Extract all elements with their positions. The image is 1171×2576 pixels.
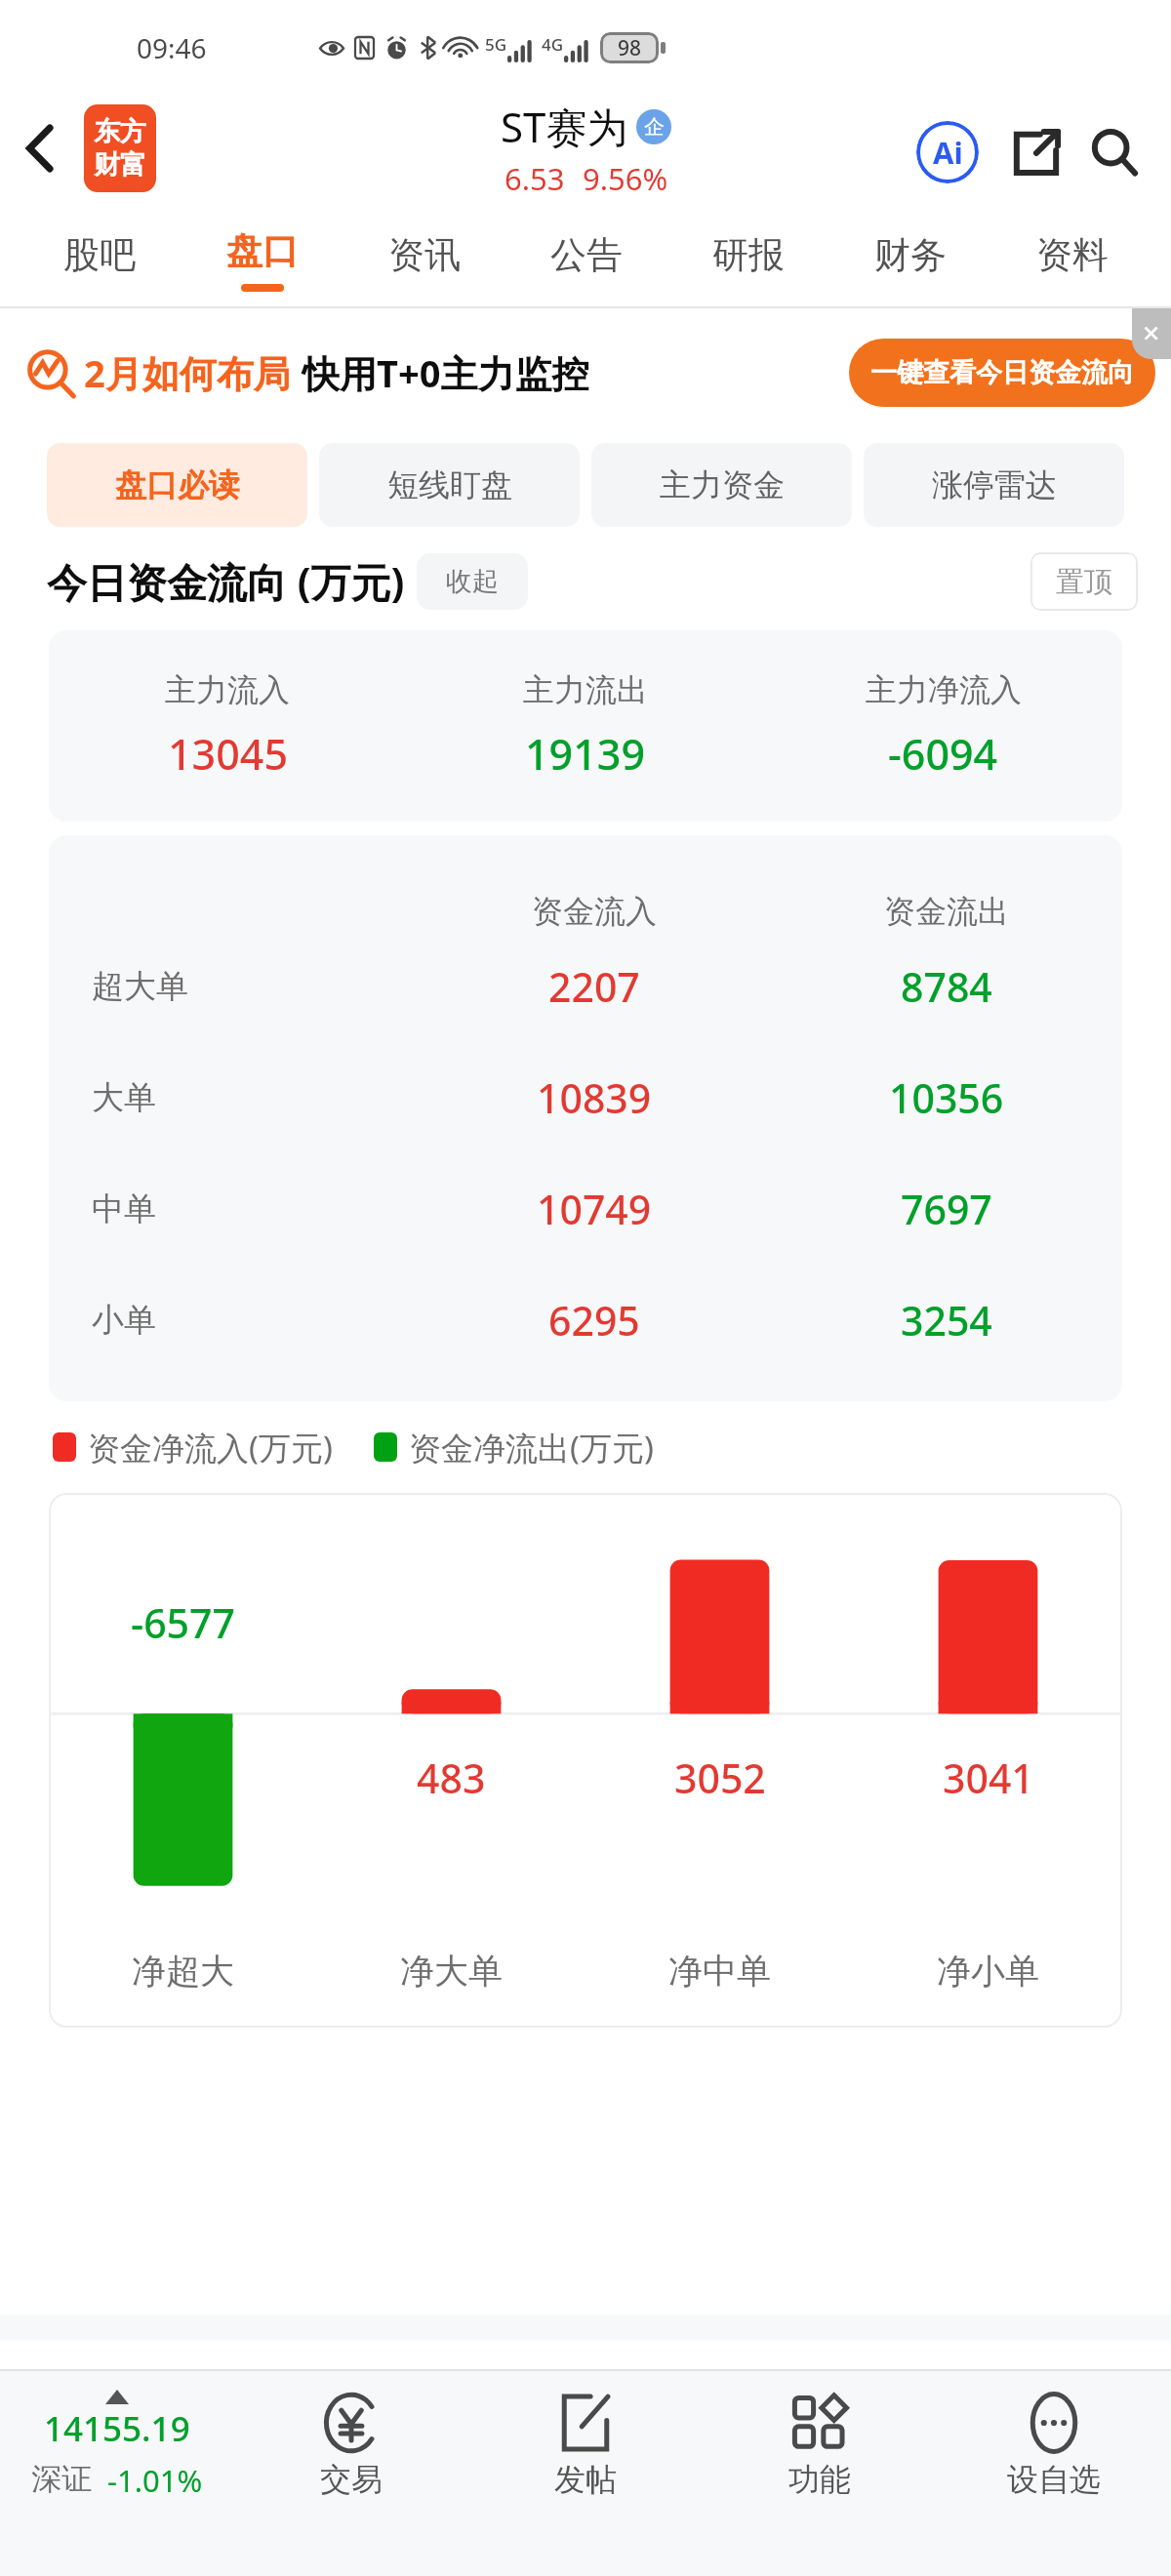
button[interactable]: 资料 (991, 207, 1153, 306)
staticText: 8784 (901, 959, 992, 1014)
button[interactable]: 超大单 (49, 931, 1122, 1042)
staticText: 短线盯盘 (387, 465, 512, 504)
staticText: 资金流出 (884, 892, 1009, 931)
button[interactable]: 14155.19 (0, 2371, 234, 2519)
button[interactable]: 中单 (49, 1153, 1122, 1265)
staticText: 涨停雷达 (932, 465, 1057, 504)
staticText: 主力流入 (165, 670, 290, 709)
button[interactable]: 东方财富 (84, 104, 156, 192)
button[interactable]: 盘口 (181, 207, 343, 306)
staticText: 13045 (168, 725, 288, 783)
staticText: 主力净流入 (866, 670, 1022, 709)
button[interactable]: 主力流入 (49, 630, 1122, 822)
staticText: 483 (417, 1751, 486, 1805)
button[interactable]: 大单 (49, 1042, 1122, 1153)
button[interactable]: Search (1079, 117, 1150, 187)
staticText: 资金净流入(万元) (88, 1426, 333, 1469)
staticText: 中单 (92, 1188, 156, 1229)
staticText: 净大单 (400, 1950, 503, 1992)
staticText: 设自选 (1007, 2460, 1101, 2499)
button[interactable]: 小单 (49, 1265, 1122, 1376)
staticText: 4G (542, 33, 564, 56)
staticText: 14155.19 (44, 2405, 190, 2452)
button[interactable]: 主力资金 (591, 443, 852, 527)
staticText: 一键查看今日资金流向 (870, 356, 1134, 389)
staticText: 资金流入 (532, 892, 657, 931)
button[interactable]: 发帖 (468, 2371, 703, 2519)
button[interactable]: Share (1001, 117, 1071, 187)
staticText: 今日资金流向 (万元) (47, 554, 405, 609)
button[interactable]: 财务 (829, 207, 991, 306)
staticText: 资讯 (388, 232, 461, 278)
staticText: 2月如何布局 (84, 347, 291, 398)
staticText: 6295 (548, 1293, 640, 1348)
staticText: 19139 (525, 725, 645, 783)
button[interactable]: 一键查看今日资金流向 (849, 339, 1155, 407)
staticText: 3254 (901, 1293, 992, 1348)
button[interactable]: 公告 (505, 207, 667, 306)
staticText: 东方 (94, 115, 146, 148)
button[interactable]: 研报 (667, 207, 829, 306)
staticText: 研报 (712, 232, 785, 278)
staticText: 财富 (94, 148, 146, 181)
staticText: 交易 (320, 2460, 383, 2499)
staticText: 公告 (550, 232, 623, 278)
staticText: 净小单 (937, 1950, 1039, 1992)
staticText: -6577 (131, 1595, 235, 1650)
staticText: ✕ (1142, 321, 1161, 347)
staticText: Ai (933, 132, 963, 173)
button[interactable]: 盘口必读 (47, 443, 307, 527)
staticText: 置顶 (1056, 564, 1112, 600)
staticText: ST赛为 (501, 99, 628, 154)
staticText: 资金净流出(万元) (409, 1426, 654, 1469)
button[interactable]: 设自选 (937, 2371, 1171, 2519)
staticText: 小单 (92, 1300, 156, 1341)
staticText: 10749 (537, 1182, 652, 1236)
staticText: 3041 (943, 1751, 1034, 1805)
button[interactable]: AI assistant (909, 114, 986, 190)
staticText: -1.01% (107, 2460, 203, 2501)
staticText: 深证 (31, 2460, 92, 2498)
button[interactable]: Back (8, 116, 72, 181)
button[interactable]: 收起 (417, 553, 528, 610)
staticText: 9.56% (583, 158, 668, 199)
staticText: 净超大 (132, 1950, 234, 1992)
staticText: 净中单 (668, 1950, 771, 1992)
staticText: 主力流出 (523, 670, 648, 709)
staticText: 超大单 (92, 966, 188, 1007)
button[interactable]: 短线盯盘 (319, 443, 580, 527)
staticText: 7697 (901, 1182, 992, 1236)
staticText: 98 (618, 34, 642, 62)
staticText: 财务 (874, 232, 947, 278)
staticText: 快用T+0主力监控 (303, 347, 589, 398)
staticText: 09:46 (137, 29, 207, 66)
button[interactable]: 资讯 (343, 207, 505, 306)
staticText: 大单 (92, 1077, 156, 1118)
staticText: 主力资金 (660, 465, 785, 504)
staticText: 6.53 (505, 158, 565, 199)
staticText: 盘口 (226, 228, 299, 274)
button[interactable]: 涨停雷达 (864, 443, 1124, 527)
staticText: 企 (644, 114, 665, 140)
button[interactable]: 交易 (234, 2371, 468, 2519)
staticText: -6094 (888, 725, 998, 783)
button[interactable]: 置顶 (1030, 552, 1138, 611)
button[interactable]: 股吧 (18, 207, 181, 306)
staticText: 股吧 (63, 232, 136, 278)
staticText: 盘口必读 (115, 465, 240, 504)
staticText: 发帖 (554, 2460, 617, 2499)
staticText: 资料 (1036, 232, 1109, 278)
staticText: 5G (485, 33, 507, 56)
staticText: 3052 (674, 1751, 766, 1805)
staticText: 10839 (537, 1070, 652, 1125)
staticText: 收起 (446, 565, 499, 598)
staticText: 2207 (548, 959, 640, 1014)
button[interactable]: 功能 (703, 2371, 937, 2519)
staticText: 10356 (889, 1070, 1004, 1125)
staticText: 功能 (788, 2460, 851, 2499)
button[interactable]: Close ad (1132, 308, 1171, 359)
